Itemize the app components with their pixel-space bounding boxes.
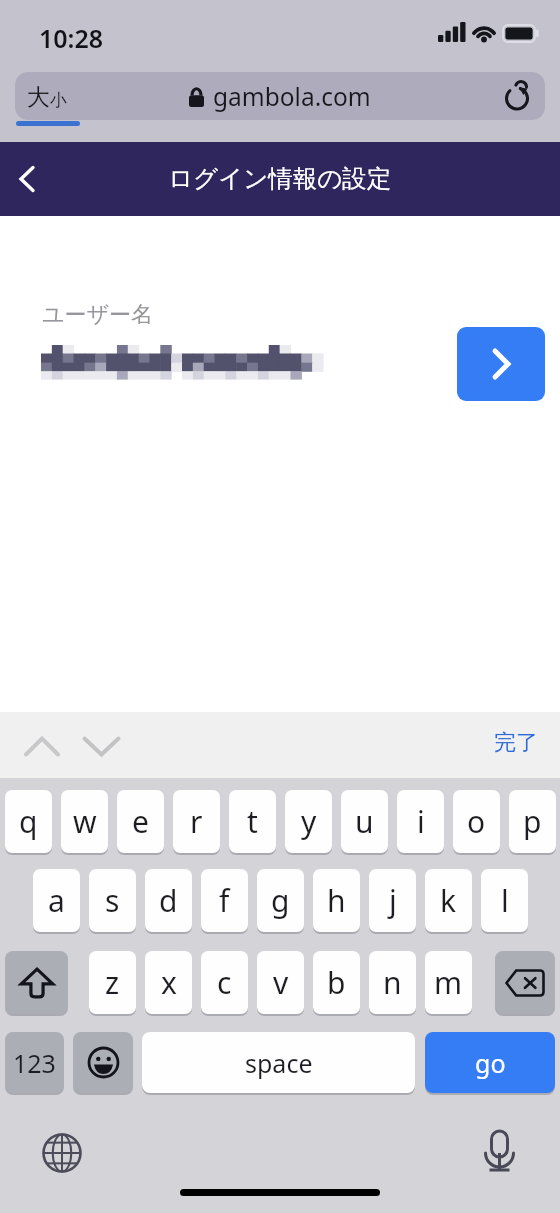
button[interactable]: n [369,951,416,1014]
button[interactable]: Reload [501,79,535,113]
button[interactable]: t [229,790,276,853]
button[interactable]: Shift [5,951,68,1014]
staticText: l [501,880,509,921]
staticText: 小 [50,90,67,111]
staticText: r [190,801,203,842]
staticText: o [467,801,486,842]
button[interactable]: h [313,869,360,932]
button[interactable]: g [257,869,304,932]
button[interactable]: i [397,790,444,853]
staticText: t [247,801,258,842]
staticText: space [245,1046,313,1080]
staticText: z [105,962,120,1003]
button[interactable]: p [509,790,556,853]
staticText: s [105,880,120,921]
button[interactable]: z [89,951,136,1014]
staticText: w [73,801,97,842]
button[interactable]: a [33,869,80,932]
button[interactable]: Backspace [495,951,555,1014]
staticText: y [301,801,317,842]
button[interactable]: Next [457,327,545,401]
button[interactable]: u [341,790,388,853]
staticText: c [217,962,232,1003]
staticText: u [355,801,374,842]
button[interactable]: Back [2,155,50,203]
staticText: d [159,880,178,921]
button[interactable]: e [117,790,164,853]
staticText: j [389,880,397,921]
button[interactable]: y [285,790,332,853]
staticText: a [48,880,65,921]
staticText: ユーザー名 [42,301,154,329]
staticText: m [434,962,463,1003]
button[interactable]: space [142,1032,415,1093]
staticText: q [19,801,38,842]
button[interactable]: s [89,869,136,932]
button[interactable]: Change keyboard [36,1126,88,1178]
button[interactable]: Previous field [18,723,63,768]
staticText: 123 [13,1046,56,1080]
button[interactable]: b [313,951,360,1014]
button[interactable]: j [369,869,416,932]
button[interactable]: Next field [78,723,123,768]
button[interactable]: d [145,869,192,932]
staticText: 完了 [494,729,538,757]
button[interactable]: 完了 [494,729,538,757]
button[interactable]: Dictation [473,1123,525,1175]
button[interactable]: l [481,869,528,932]
button[interactable]: w [61,790,108,853]
staticText: go [475,1046,506,1080]
staticText: h [327,880,346,921]
button[interactable]: o [453,790,500,853]
staticText: p [523,801,542,842]
staticText: g [271,880,290,921]
staticText: f [219,880,230,921]
staticText: x [161,962,177,1003]
button[interactable]: k [425,869,472,932]
staticText: gambola.com [213,80,371,113]
staticText: n [383,962,402,1003]
button[interactable]: v [257,951,304,1014]
button[interactable]: f [201,869,248,932]
button[interactable]: m [425,951,472,1014]
staticText: 大 [27,83,50,112]
staticText: k [440,880,457,921]
button[interactable]: Emoji [73,1032,133,1093]
button[interactable]: go [425,1032,555,1093]
staticText: b [327,962,346,1003]
staticText: i [417,801,425,842]
button[interactable]: x [145,951,192,1014]
button[interactable]: r [173,790,220,853]
button[interactable]: 大 [15,72,545,120]
button[interactable]: c [201,951,248,1014]
staticText: e [132,801,149,842]
staticText: ログイン情報の設定 [168,163,392,194]
button[interactable]: 123 [5,1032,64,1093]
staticText: 10:28 [39,21,104,55]
button[interactable]: q [5,790,52,853]
staticText: v [273,962,289,1003]
